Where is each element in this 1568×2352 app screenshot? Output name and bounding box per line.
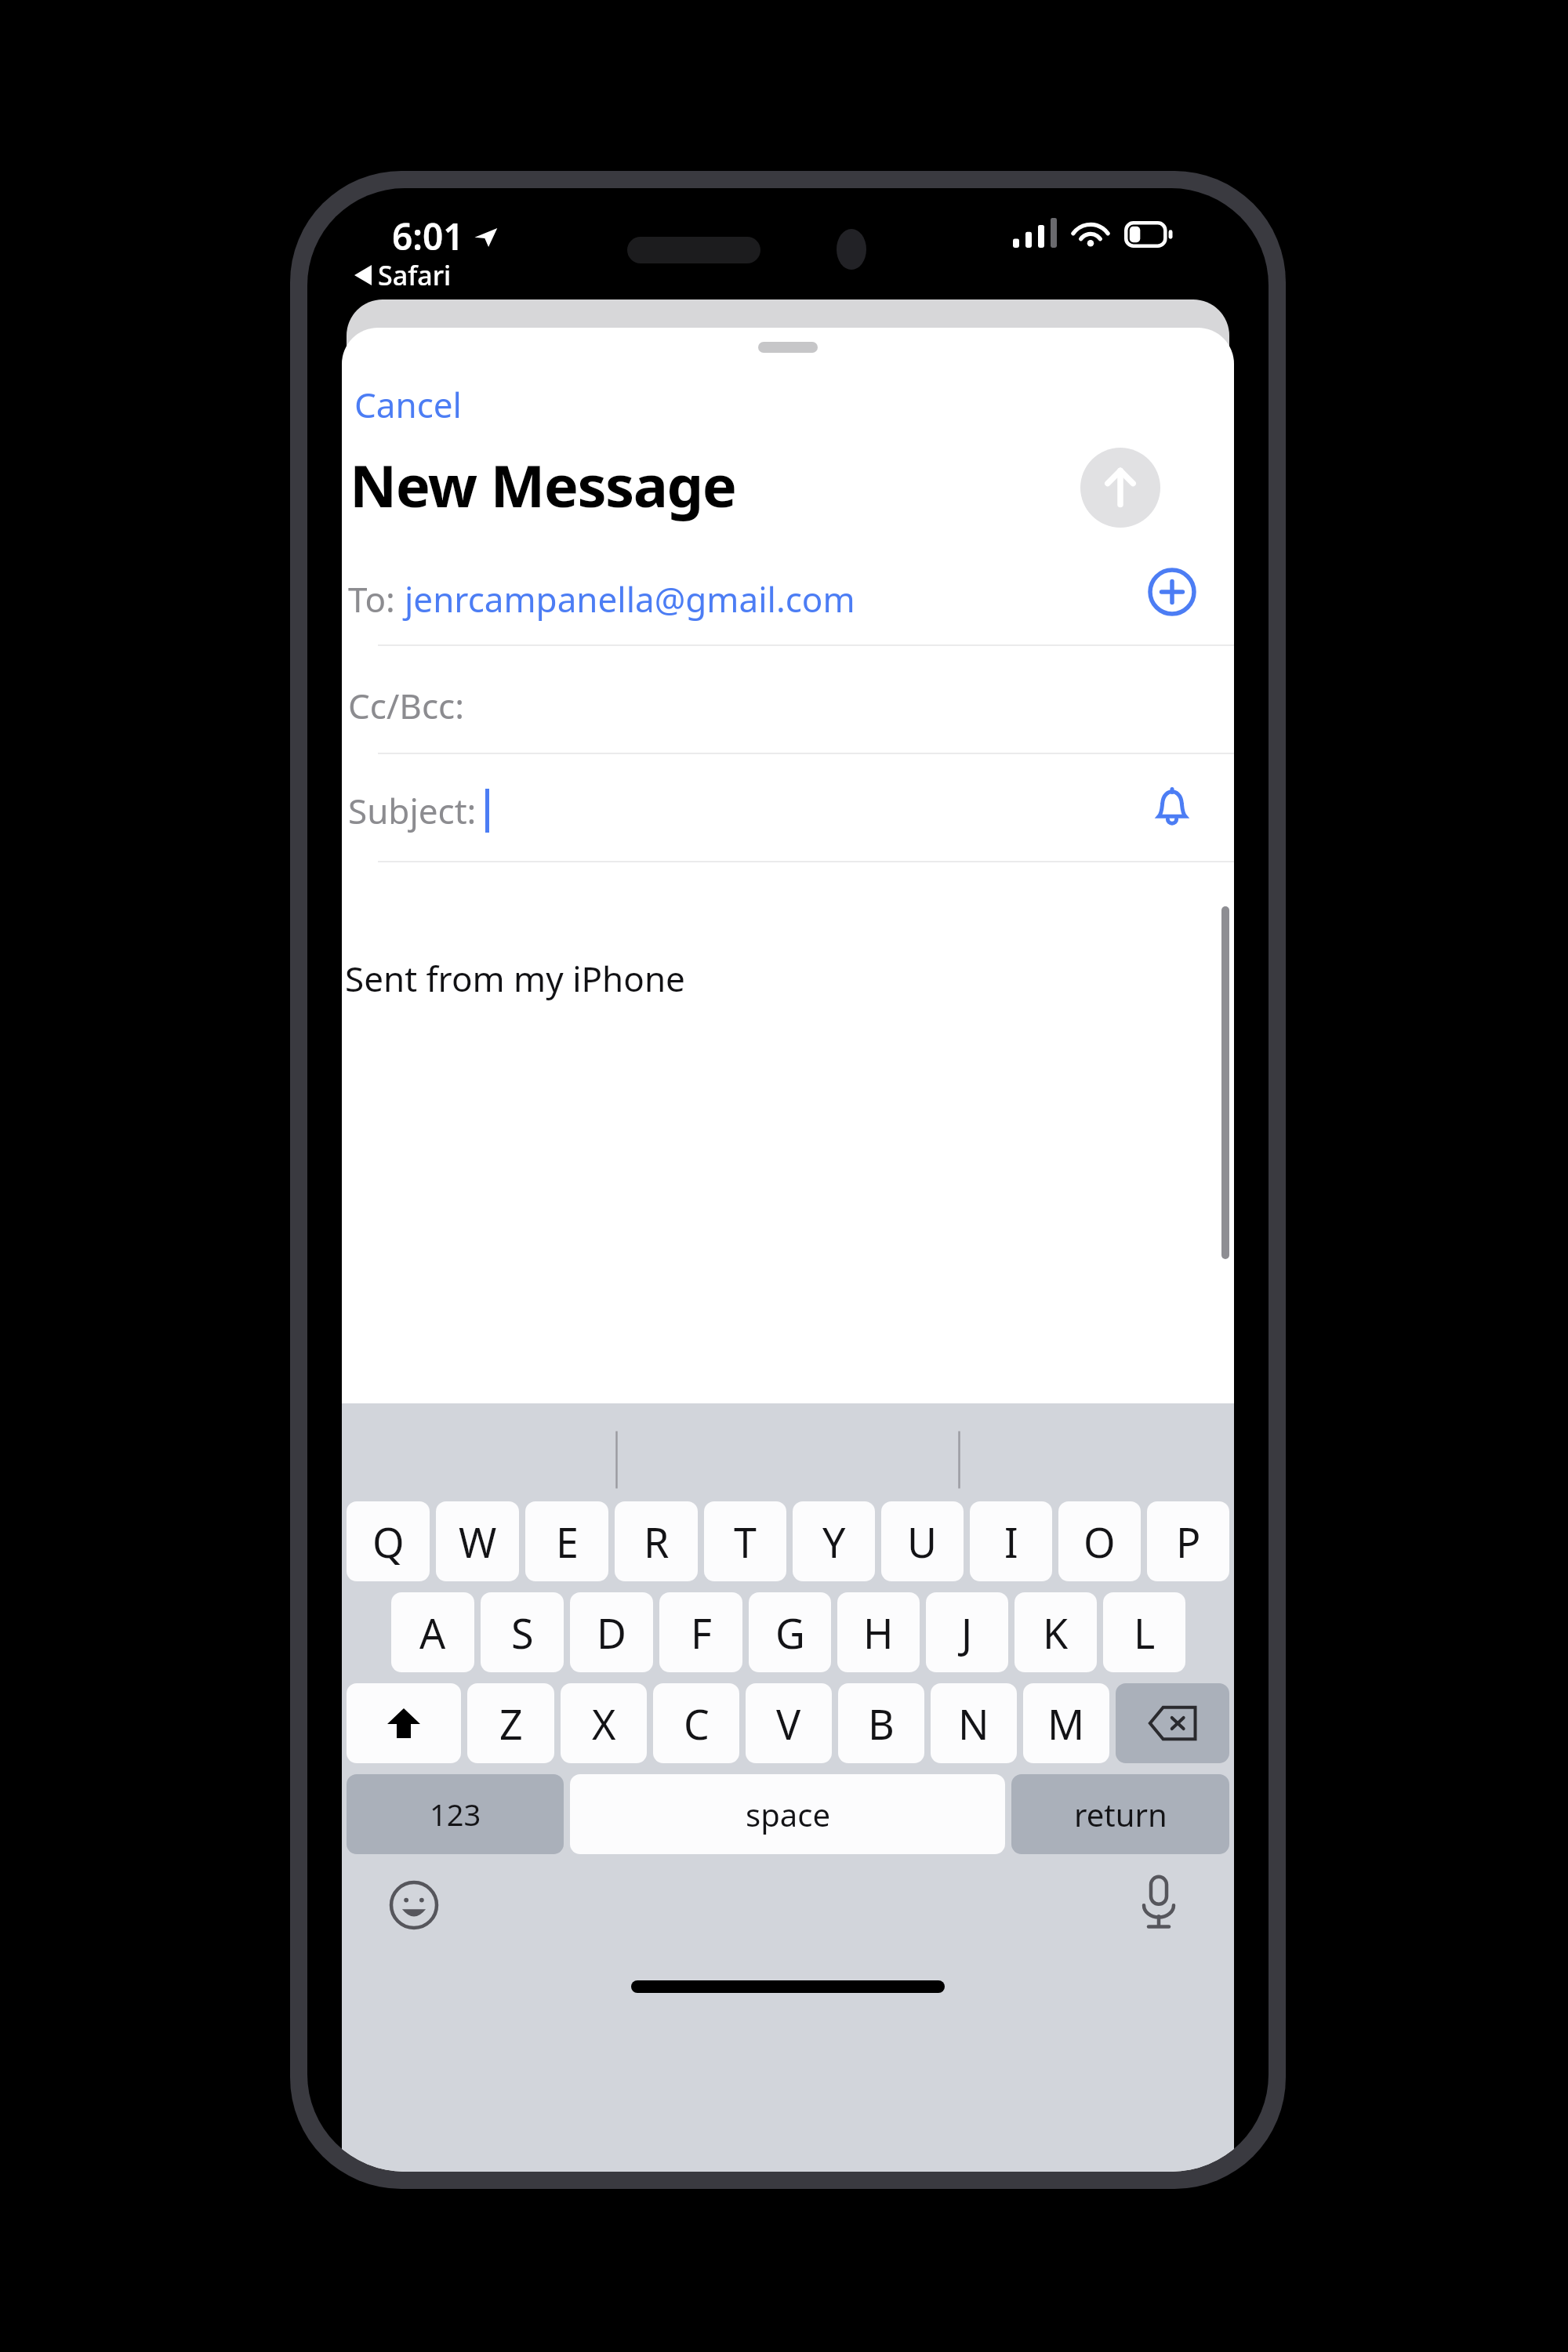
button[interactable]: P [1147,1501,1229,1581]
button[interactable]: To: [342,539,1234,644]
button[interactable]: I [970,1501,1052,1581]
button[interactable]: W [436,1501,519,1581]
button[interactable]: Subject: [342,754,1234,861]
button[interactable]: V [746,1683,832,1763]
staticText: O [1083,1514,1116,1570]
staticText: W [459,1514,497,1570]
staticText: B [868,1696,895,1751]
button[interactable]: Cancel [347,376,470,433]
button[interactable]: O [1058,1501,1141,1581]
button[interactable]: H [837,1592,920,1672]
staticText: U [907,1514,938,1570]
button[interactable]: U [881,1501,964,1581]
staticText: Y [822,1514,846,1570]
staticText: Cc/Bcc: [348,682,464,729]
staticText: K [1043,1605,1069,1661]
staticText: space [746,1793,830,1835]
button[interactable]: B [838,1683,924,1763]
button[interactable]: Notify me [1146,782,1198,833]
button[interactable]: L [1103,1592,1185,1672]
staticText: D [597,1605,626,1661]
button[interactable]: J [926,1592,1008,1672]
staticText: X [592,1696,616,1751]
staticText: 123 [430,1794,481,1835]
staticText: Sent from my iPhone [345,955,685,1002]
staticText: Cancel [354,381,462,428]
staticText: G [775,1605,805,1661]
staticText: return [1074,1793,1167,1835]
button[interactable]: F [659,1592,742,1672]
button[interactable]: T [704,1501,786,1581]
button[interactable]: Cc/Bcc: [342,646,1234,753]
button[interactable]: return [1011,1774,1229,1854]
staticText: Z [499,1696,523,1751]
button[interactable]: Shift [347,1683,461,1763]
staticText: R [644,1514,670,1570]
staticText: P [1176,1514,1201,1570]
staticText: Q [372,1514,405,1570]
button[interactable]: K [1014,1592,1097,1672]
staticText: C [684,1696,710,1751]
button[interactable]: G [749,1592,831,1672]
button[interactable]: Send [1080,448,1160,528]
staticText: S [511,1605,534,1661]
button[interactable]: Back to Safari [351,256,455,295]
button[interactable]: 123 [347,1774,564,1854]
button[interactable]: R [615,1501,698,1581]
button[interactable]: N [931,1683,1017,1763]
button[interactable]: C [653,1683,739,1763]
staticText: V [776,1696,801,1751]
staticText: Safari [378,257,452,293]
button[interactable]: Z [467,1683,554,1763]
button[interactable]: X [561,1683,647,1763]
button[interactable]: Add contact [1146,566,1198,618]
button[interactable]: Y [793,1501,875,1581]
button[interactable]: Dictation [1131,1874,1187,1930]
staticText: E [556,1514,579,1570]
button[interactable]: Backspace [1116,1683,1229,1763]
button[interactable]: M [1023,1683,1109,1763]
staticText: J [961,1605,973,1661]
staticText: A [419,1605,446,1661]
staticText: M [1047,1696,1085,1751]
button[interactable]: Q [347,1501,430,1581]
staticText: F [691,1605,712,1661]
staticText: To: [348,575,405,622]
staticText: I [1004,1514,1018,1570]
staticText: 6:01 [392,212,464,261]
staticText: T [734,1514,757,1570]
staticText: Subject: [348,787,485,834]
button[interactable]: space [570,1774,1005,1854]
button[interactable]: E [525,1501,608,1581]
staticText: N [958,1696,989,1751]
button[interactable]: D [570,1592,653,1672]
button[interactable]: S [481,1592,564,1672]
staticText: L [1134,1605,1156,1661]
staticText: New Message [350,445,736,524]
staticText: H [863,1605,894,1661]
staticText: jenrcampanella@gmail.com [405,575,855,622]
button[interactable]: Emoji [387,1878,441,1932]
button[interactable]: A [391,1592,474,1672]
